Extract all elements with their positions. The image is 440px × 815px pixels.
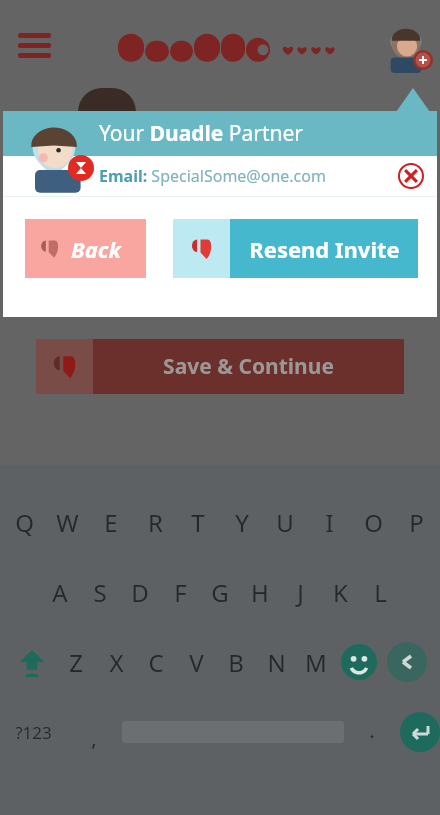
- staticText: N: [267, 646, 286, 679]
- staticText: J: [297, 576, 304, 609]
- button[interactable]: Backspace: [382, 637, 432, 687]
- staticText: M: [305, 646, 327, 679]
- staticText: B: [228, 646, 244, 679]
- button[interactable]: Z: [56, 634, 96, 690]
- button[interactable]: X: [96, 634, 136, 690]
- staticText: O: [364, 506, 383, 539]
- button[interactable]: W: [47, 494, 87, 550]
- button[interactable]: A: [40, 564, 80, 620]
- staticText: F: [174, 576, 187, 609]
- button[interactable]: T: [178, 494, 218, 550]
- button[interactable]: D: [120, 564, 160, 620]
- staticText: ,: [91, 725, 97, 752]
- staticText: K: [333, 576, 348, 609]
- button[interactable]: M: [296, 634, 336, 690]
- button[interactable]: H: [240, 564, 280, 620]
- button[interactable]: Shift: [8, 638, 56, 686]
- button[interactable]: Profile: [378, 17, 434, 73]
- staticText: D: [131, 576, 149, 609]
- button[interactable]: B: [216, 634, 256, 690]
- staticText: Resend Invite: [249, 234, 400, 264]
- button[interactable]: Y: [222, 494, 262, 550]
- button[interactable]: K: [320, 564, 360, 620]
- staticText: X: [109, 646, 124, 679]
- button[interactable]: R: [135, 494, 175, 550]
- button[interactable]: V: [176, 634, 216, 690]
- button[interactable]: O: [353, 494, 393, 550]
- staticText: R: [148, 506, 163, 539]
- button[interactable]: F: [160, 564, 200, 620]
- button[interactable]: G: [200, 564, 240, 620]
- button[interactable]: Close: [397, 162, 425, 190]
- button[interactable]: Resend Invite: [173, 219, 418, 278]
- staticText: H: [251, 576, 269, 609]
- button[interactable]: C: [136, 634, 176, 690]
- staticText: ?123: [15, 721, 52, 744]
- staticText: E: [104, 506, 118, 539]
- staticText: U: [276, 506, 294, 539]
- button[interactable]: L: [360, 564, 400, 620]
- staticText: S: [93, 576, 107, 609]
- staticText: Y: [235, 506, 249, 539]
- staticText: T: [191, 506, 205, 539]
- staticText: W: [56, 506, 79, 539]
- staticText: P: [409, 506, 424, 539]
- button[interactable]: P: [396, 494, 436, 550]
- staticText: Email: SpecialSome@one.com: [99, 165, 326, 187]
- staticText: C: [148, 646, 164, 679]
- button[interactable]: Menu: [12, 25, 56, 65]
- button[interactable]: Emoji: [336, 639, 382, 685]
- staticText: Save & Continue: [163, 352, 334, 381]
- button[interactable]: Enter: [400, 707, 440, 757]
- staticText: Your Duadle Partner: [99, 119, 304, 148]
- staticText: .: [369, 717, 375, 744]
- button[interactable]: Save & Continue: [36, 339, 404, 394]
- staticText: Z: [69, 646, 83, 679]
- button[interactable]: E: [91, 494, 131, 550]
- button[interactable]: S: [80, 564, 120, 620]
- staticText: A: [52, 576, 68, 609]
- button[interactable]: J: [280, 564, 320, 620]
- staticText: Q: [15, 506, 34, 539]
- staticText: L: [374, 576, 387, 609]
- button[interactable]: Q: [4, 494, 44, 550]
- staticText: V: [189, 646, 204, 679]
- staticText: G: [211, 576, 229, 609]
- button[interactable]: I: [309, 494, 349, 550]
- button[interactable]: U: [265, 494, 305, 550]
- button[interactable]: Back: [25, 219, 146, 278]
- staticText: Back: [71, 234, 121, 264]
- staticText: I: [325, 506, 334, 539]
- button[interactable]: ?123: [0, 697, 66, 767]
- button[interactable]: N: [256, 634, 296, 690]
